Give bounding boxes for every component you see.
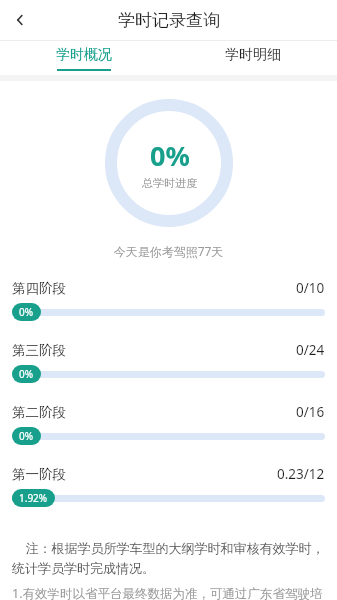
staticText: 1.有效学时以省平台最终数据为准，可通过广东省驾驶培训公众服务网（https:/… — [12, 585, 325, 600]
button[interactable]: 学时概况 — [0, 41, 168, 75]
staticText: 0/10 — [296, 279, 325, 297]
button[interactable]: 第二阶段 — [0, 403, 337, 465]
staticText: 0/16 — [296, 403, 325, 421]
button[interactable]: 第四阶段 — [0, 279, 337, 341]
button[interactable]: 学时明细 — [168, 41, 337, 75]
staticText: 0% — [150, 137, 190, 174]
button[interactable]: 第一阶段 — [0, 465, 337, 527]
staticText: 1.92% — [19, 491, 48, 505]
staticText: 0% — [19, 305, 34, 319]
staticText: 0.23/12 — [277, 465, 325, 483]
staticText: 总学时进度 — [142, 176, 197, 190]
staticText: 第三阶段 — [12, 342, 66, 359]
staticText: 第一阶段 — [12, 466, 66, 483]
button[interactable]: Back — [0, 0, 40, 40]
button[interactable]: 第三阶段 — [0, 341, 337, 403]
staticText: 学时记录查询 — [118, 10, 220, 31]
staticText: 注：根据学员所学车型的大纲学时和审核有效学时，统计学员学时完成情况。 — [12, 539, 325, 577]
staticText: 第四阶段 — [12, 280, 66, 297]
staticText: 0/24 — [296, 341, 325, 359]
staticText: 0% — [19, 367, 34, 381]
staticText: 学时明细 — [225, 46, 281, 64]
staticText: 0% — [19, 429, 34, 443]
staticText: 今天是你考驾照77天 — [0, 243, 337, 259]
staticText: 学时概况 — [56, 46, 112, 64]
staticText: 第二阶段 — [12, 404, 66, 421]
